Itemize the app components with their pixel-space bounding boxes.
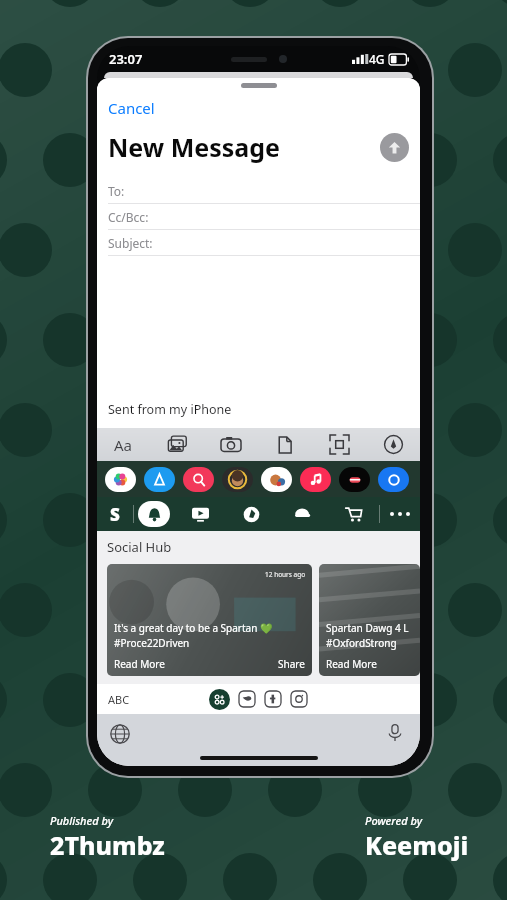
button[interactable]: Shop [328, 497, 379, 531]
button[interactable]: More [380, 497, 420, 531]
staticText: Social Hub [107, 538, 172, 556]
button[interactable]: photos [150, 428, 204, 461]
button[interactable]: Scores [226, 497, 277, 531]
button[interactable]: App 3 [222, 467, 253, 492]
button[interactable]: Read More [326, 657, 377, 671]
button[interactable]: Cc/Bcc: [97, 204, 420, 230]
button[interactable]: Aa [97, 428, 150, 461]
button[interactable]: Dictation [384, 722, 406, 744]
staticText: S [110, 503, 120, 526]
button[interactable]: Teams [277, 497, 328, 531]
staticText: New Message [108, 130, 380, 164]
staticText: #Proce22Driven [114, 636, 190, 650]
button[interactable]: ABC [97, 692, 138, 707]
staticText: Cc/Bcc: [108, 209, 149, 225]
staticText: Share [278, 657, 305, 671]
staticText: Spartan Dawg 4 L [326, 621, 409, 635]
button[interactable]: Facebook [264, 690, 282, 708]
button[interactable]: scan [312, 428, 366, 461]
staticText: Read More [326, 657, 377, 671]
staticText: Subject: [108, 235, 153, 251]
button[interactable]: Send [380, 133, 409, 162]
button[interactable]: Instagram [290, 690, 308, 708]
staticText: Read More [114, 657, 165, 671]
button[interactable]: App 4 [261, 467, 292, 492]
staticText: Keemoji [365, 828, 469, 862]
staticText: Cancel [108, 98, 155, 118]
staticText: To: [108, 183, 125, 199]
button[interactable]: doc [258, 428, 312, 461]
button[interactable]: App 2 [183, 467, 214, 492]
button[interactable]: Notifications [134, 497, 174, 531]
staticText: Sent from my iPhone [108, 401, 232, 418]
button[interactable]: Keemoji [209, 689, 230, 710]
button[interactable]: Spartan Dawg 4 L [319, 564, 420, 676]
button[interactable]: Subject: [97, 230, 420, 256]
button[interactable]: Read More [114, 657, 165, 671]
button[interactable]: Change keyboard [109, 723, 131, 745]
button[interactable]: Videos [174, 497, 226, 531]
button[interactable]: App 5 [300, 467, 331, 492]
button[interactable]: Cancel [97, 96, 166, 120]
staticText: #OxfordStrong [326, 636, 397, 650]
button[interactable]: 12 hours ago [107, 564, 312, 676]
button[interactable]: camera [204, 428, 258, 461]
button[interactable]: Share [278, 657, 312, 671]
staticText: It's a great day to be a Spartan 💚 [114, 621, 273, 635]
button[interactable]: markup [366, 428, 420, 461]
staticText: 12 hours ago [265, 570, 306, 579]
staticText: 2Thumbz [50, 828, 165, 862]
staticText: 4G [369, 51, 385, 67]
button[interactable]: App 7 [378, 467, 409, 492]
staticText: Aa [114, 435, 133, 455]
button[interactable]: Spartans [97, 497, 133, 531]
button[interactable]: App 0 [105, 467, 136, 492]
staticText: Published by [50, 813, 113, 828]
staticText: 23:07 [109, 50, 143, 68]
button[interactable]: Twitter [238, 690, 256, 708]
button[interactable]: To: [97, 178, 420, 204]
staticText: ABC [108, 692, 130, 707]
button[interactable]: App 6 [339, 467, 370, 492]
button[interactable]: App 1 [144, 467, 175, 492]
staticText: Powered by [365, 813, 422, 828]
